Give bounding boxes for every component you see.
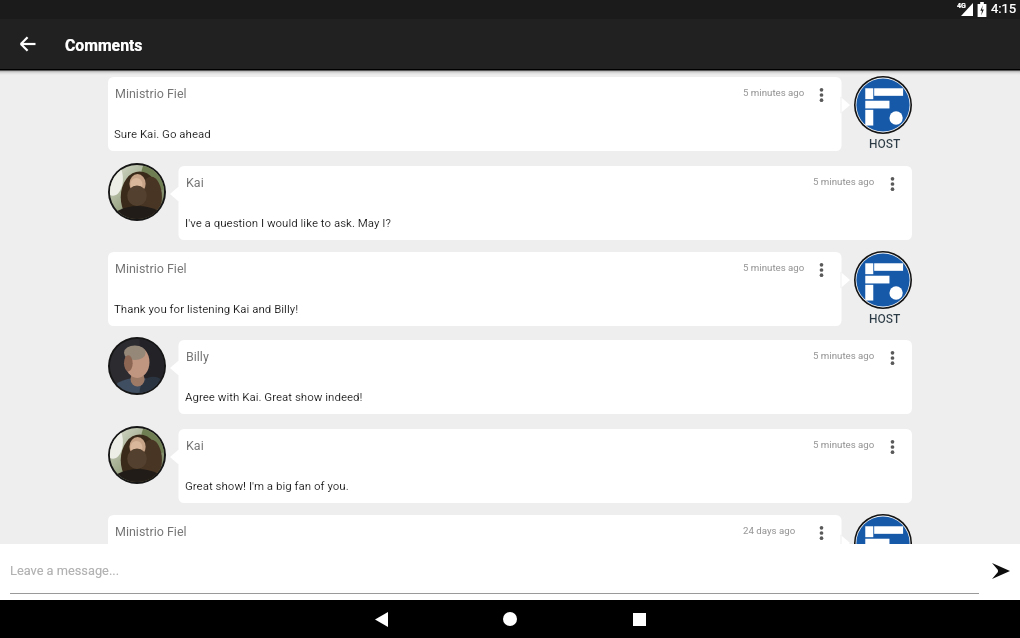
button[interactable]: Kai avatar — [108, 426, 166, 484]
button[interactable]: Host avatar — [854, 251, 912, 309]
button[interactable]: Home — [490, 600, 530, 638]
staticText: Ministrio Fiel — [115, 261, 187, 276]
staticText: I've a question I would like to ask. May… — [185, 216, 391, 229]
button[interactable]: Ministrio Fiel — [108, 515, 850, 544]
button[interactable]: Billy — [170, 340, 912, 414]
button[interactable]: Back — [361, 600, 401, 638]
button[interactable]: Send — [980, 554, 1020, 588]
button[interactable]: Ministrio Fiel — [108, 252, 850, 326]
staticText: 5 minutes ago — [813, 176, 875, 187]
staticText: HOST — [869, 137, 901, 151]
button[interactable]: Ministrio Fiel — [108, 77, 850, 151]
staticText: Ministrio Fiel — [115, 524, 187, 539]
button[interactable]: More options — [880, 435, 904, 459]
button[interactable]: Kai — [170, 429, 912, 503]
button[interactable]: Host avatar — [854, 76, 912, 134]
staticText: HOST — [869, 312, 901, 326]
staticText: Agree with Kai. Great show indeed! — [185, 390, 363, 403]
staticText: 4:15 — [991, 1, 1017, 16]
button[interactable]: Kai avatar — [108, 163, 166, 221]
button[interactable]: Billy avatar — [108, 337, 166, 395]
button[interactable]: Leave a message... — [0, 544, 1020, 600]
button[interactable]: More options — [880, 172, 904, 196]
staticText: 5 minutes ago — [813, 350, 875, 361]
button[interactable]: Recents — [619, 600, 659, 638]
button[interactable]: More options — [809, 83, 833, 107]
staticText: Sure Kai. Go ahead — [114, 127, 211, 140]
staticText: 5 minutes ago — [813, 439, 875, 450]
button[interactable]: Host avatar — [854, 514, 912, 544]
button[interactable]: More options — [880, 346, 904, 370]
button[interactable]: Back — [8, 24, 48, 64]
staticText: Leave a message... — [10, 563, 120, 578]
button[interactable]: More options — [809, 258, 833, 282]
button[interactable]: Kai — [170, 166, 912, 240]
staticText: 5 minutes ago — [743, 87, 805, 98]
staticText: 5 minutes ago — [743, 262, 805, 273]
staticText: Kai — [186, 438, 204, 453]
staticText: Billy — [186, 349, 209, 364]
staticText: 4G — [957, 2, 966, 10]
staticText: Ministrio Fiel — [115, 86, 187, 101]
staticText: Thank you for listening Kai and Billy! — [114, 302, 299, 315]
staticText: Comments — [65, 36, 143, 55]
button[interactable]: More options — [809, 521, 833, 544]
staticText: Great show! I'm a big fan of you. — [185, 479, 349, 492]
staticText: 24 days ago — [743, 525, 796, 536]
staticText: Kai — [186, 175, 204, 190]
